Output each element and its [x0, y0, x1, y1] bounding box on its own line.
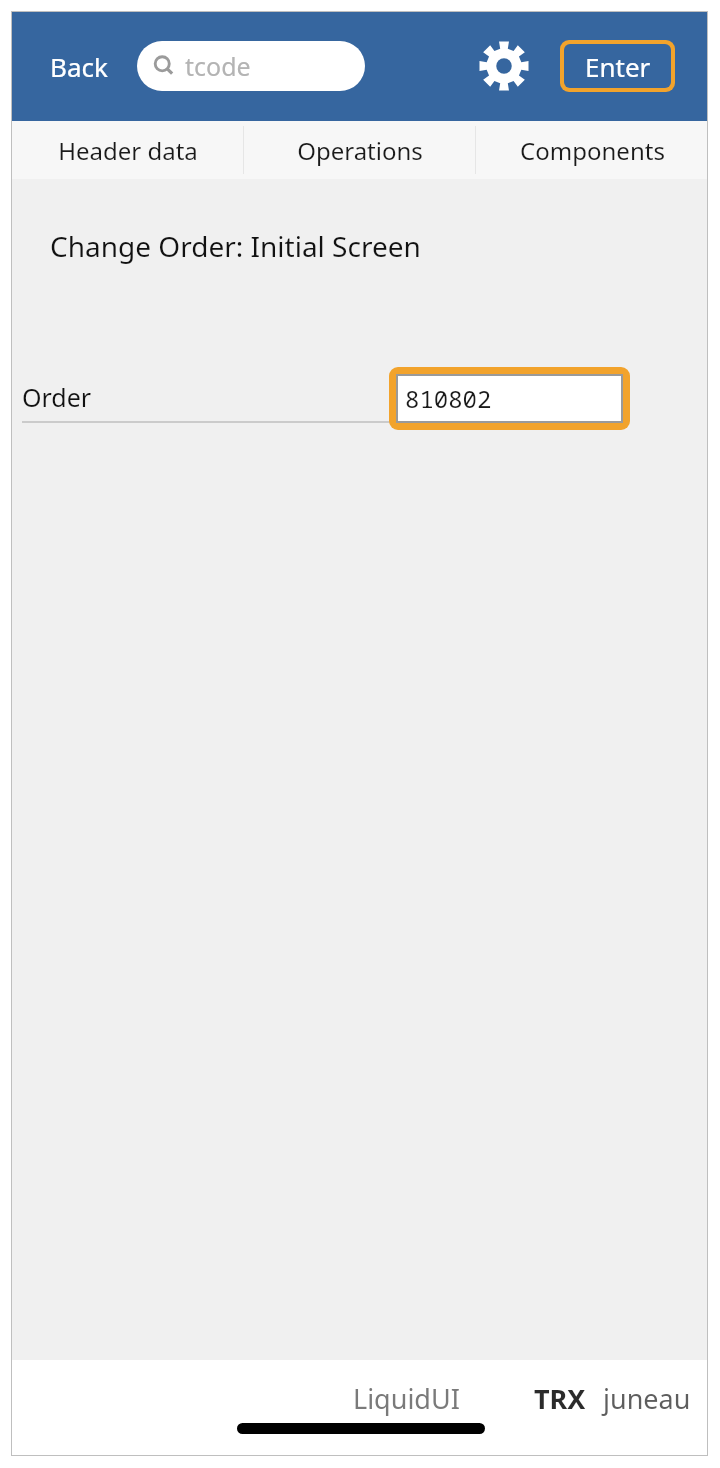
- staticText: Header data: [58, 134, 198, 167]
- button[interactable]: tcode: [137, 41, 365, 91]
- button[interactable]: LiquidUI: [353, 1380, 460, 1417]
- button[interactable]: Components: [476, 121, 708, 179]
- button[interactable]: Back: [44, 43, 114, 90]
- button[interactable]: Header data: [11, 121, 244, 179]
- staticText: TRX: [534, 1380, 586, 1417]
- staticText: Order: [22, 380, 92, 414]
- button[interactable]: Operations: [244, 121, 476, 179]
- staticText: Change Order: Initial Screen: [50, 227, 421, 265]
- staticText: Enter: [585, 49, 651, 84]
- staticText: Operations: [297, 134, 423, 167]
- staticText: Components: [520, 134, 665, 167]
- staticText: Back: [50, 49, 108, 84]
- button[interactable]: Enter: [560, 40, 675, 92]
- button[interactable]: 810802: [389, 367, 630, 430]
- staticText: 810802: [405, 382, 492, 415]
- staticText: tcode: [185, 49, 251, 83]
- staticText: juneau: [603, 1380, 691, 1417]
- button[interactable]: Settings: [477, 39, 531, 93]
